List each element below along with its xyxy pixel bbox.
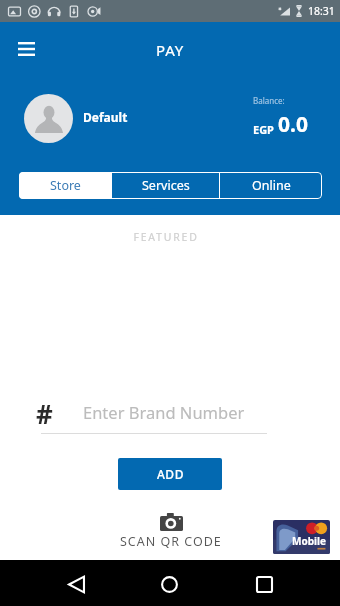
- button[interactable]: Back: [56, 564, 97, 605]
- staticText: SCAN QR CODE: [120, 533, 222, 550]
- staticText: EGP: [253, 122, 274, 137]
- staticText: #: [36, 396, 53, 431]
- staticText: FEATURED: [0, 230, 336, 244]
- button[interactable]: Recents: [244, 564, 285, 605]
- staticText: PAY: [0, 40, 340, 60]
- staticText: Enter Brand Number: [83, 401, 245, 423]
- staticText: 0.0: [278, 110, 308, 139]
- button[interactable]: SCAN QR CODE: [114, 511, 228, 552]
- button[interactable]: Services: [112, 172, 219, 199]
- staticText: Balance:: [253, 95, 285, 106]
- staticText: Online: [252, 177, 291, 194]
- staticText: Mobile: [292, 534, 326, 548]
- staticText: Services: [142, 177, 190, 194]
- button[interactable]: Menu: [12, 35, 40, 63]
- button[interactable]: Store: [19, 172, 111, 199]
- staticText: Store: [50, 177, 81, 194]
- staticText: 18:31: [308, 4, 335, 18]
- staticText: Default: [83, 109, 128, 125]
- staticText: ADD: [157, 466, 184, 482]
- button[interactable]: ADD: [118, 458, 222, 490]
- button[interactable]: Profile: [24, 94, 73, 143]
- button[interactable]: Online: [220, 172, 322, 199]
- button[interactable]: MasterCard Mobile: [273, 520, 330, 554]
- button[interactable]: Home: [149, 564, 190, 605]
